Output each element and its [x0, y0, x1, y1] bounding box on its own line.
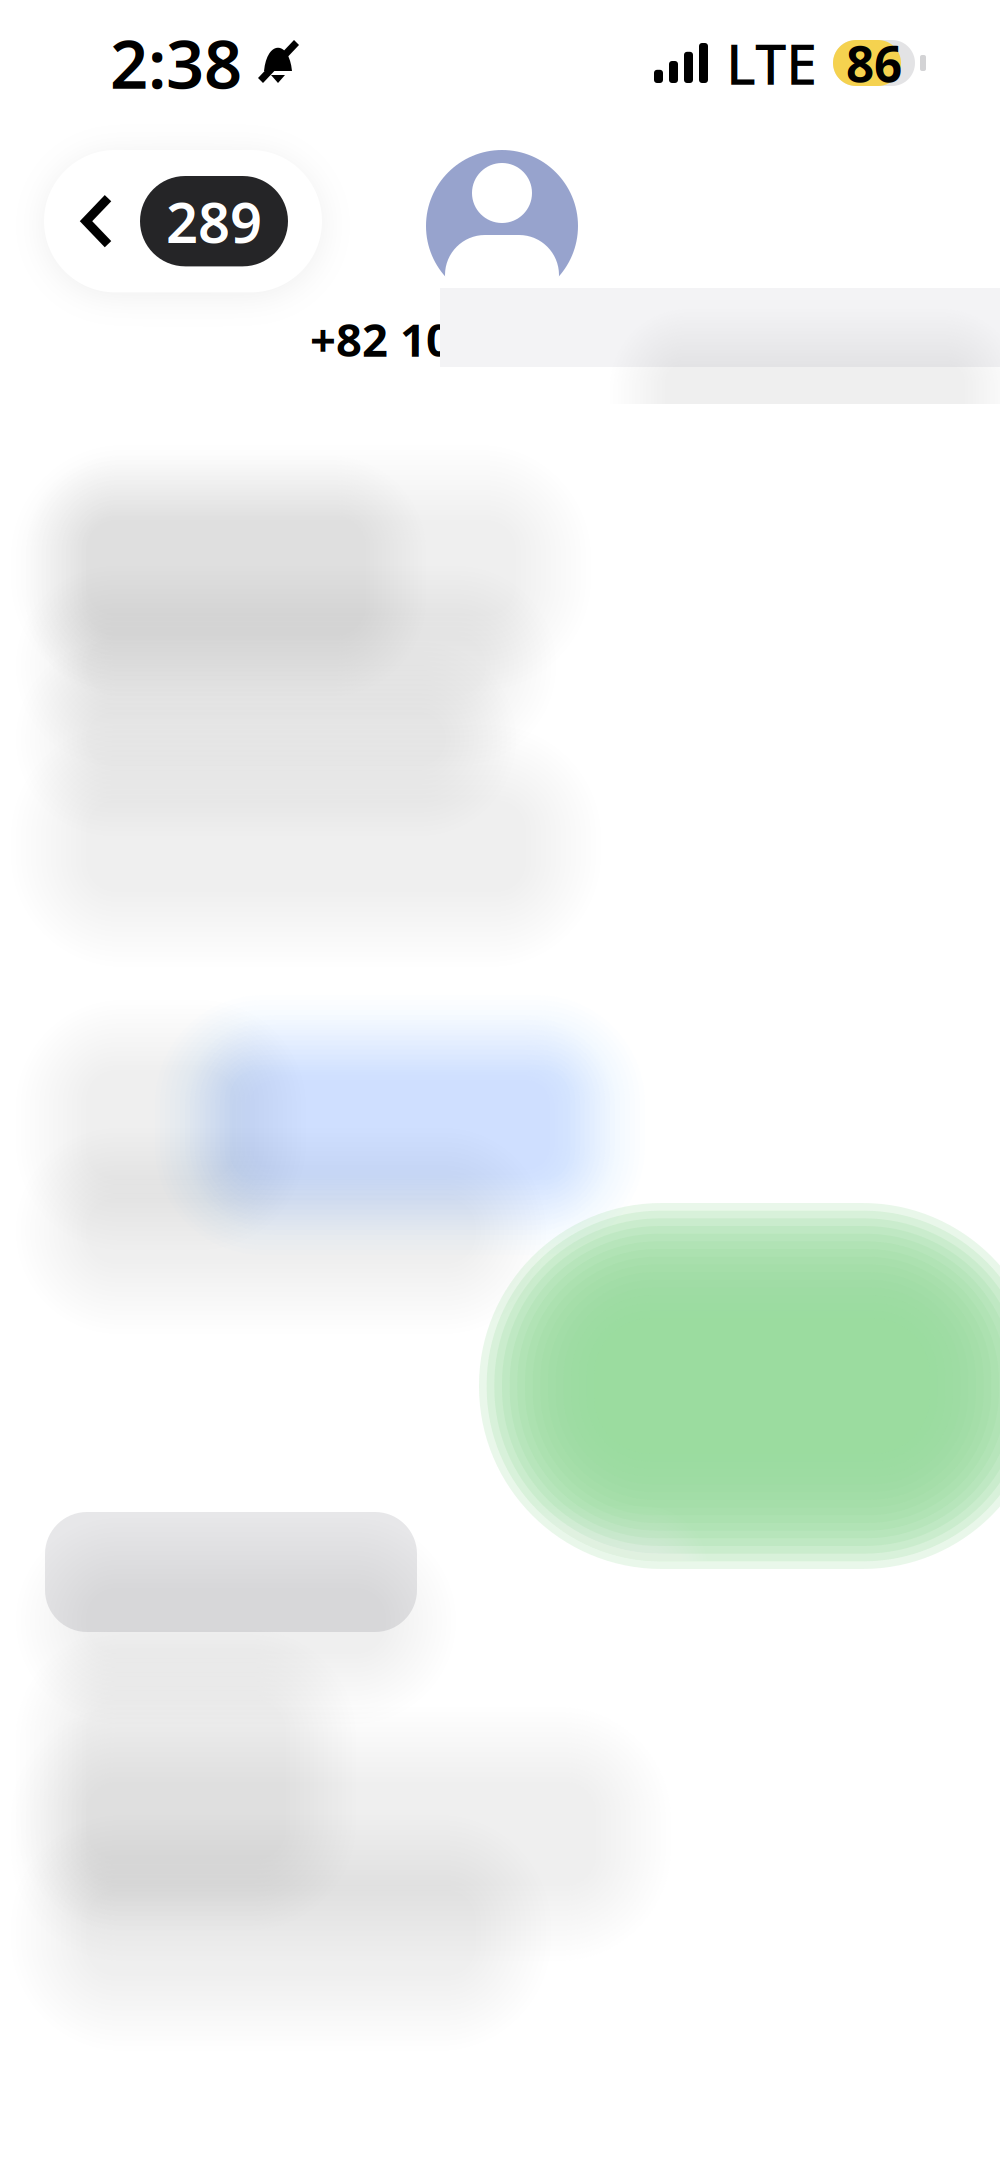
staticText: 2:38	[110, 19, 242, 107]
staticText: +82 10-	[310, 309, 467, 369]
staticText: 86	[846, 30, 902, 96]
button[interactable]: Back, 289 unread	[44, 150, 322, 292]
staticText: LTE	[726, 26, 817, 100]
staticText: 289	[166, 184, 262, 258]
